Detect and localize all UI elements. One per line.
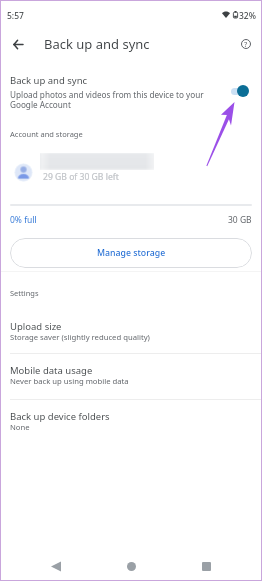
staticText: Account and storage: [10, 129, 83, 139]
button[interactable]: Home: [113, 548, 149, 581]
button[interactable]: Manage storage: [10, 238, 252, 268]
staticText: None: [10, 422, 30, 432]
staticText: 30 GB: [228, 214, 252, 226]
staticText: Back up and sync: [44, 35, 150, 53]
staticText: 0% full: [10, 214, 37, 226]
staticText: 32%: [239, 10, 256, 22]
staticText: 29 GB of 30 GB left: [43, 171, 119, 183]
button[interactable]: Upload size: [0, 314, 262, 354]
button[interactable]: Mobile data usage: [0, 358, 262, 398]
button[interactable]: Back: [5, 31, 31, 57]
button[interactable]: Back up and sync toggle: [226, 81, 254, 101]
staticText: Storage saver (slightly reduced quality): [10, 332, 150, 342]
staticText: Back up device folders: [10, 410, 110, 423]
staticText: Mobile data usage: [10, 364, 93, 377]
staticText: Manage storage: [97, 247, 166, 259]
button[interactable]: Back up device folders: [0, 404, 262, 444]
staticText: Never back up using mobile data: [10, 376, 129, 386]
button[interactable]: Back: [38, 548, 74, 581]
staticText: Back up and sync: [10, 74, 88, 87]
staticText: Settings: [10, 288, 39, 298]
staticText: Upload size: [10, 320, 62, 333]
staticText: 5:57: [7, 10, 24, 22]
button[interactable]: Help: [233, 31, 259, 57]
button[interactable]: Recents: [188, 548, 224, 581]
staticText: ?: [244, 39, 248, 49]
staticText: Upload photos and videos from this devic…: [10, 89, 204, 111]
